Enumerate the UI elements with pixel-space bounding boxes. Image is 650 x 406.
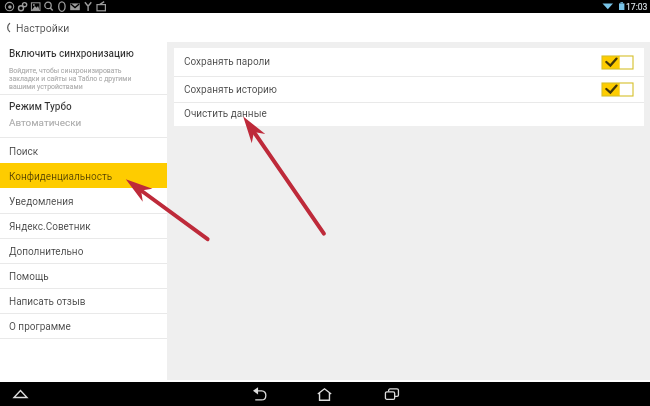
button[interactable]: Очистить данные [174,103,644,126]
staticText: О программе [9,321,71,333]
button[interactable]: Уведомления [0,188,167,213]
button[interactable]: Включить синхронизацию [0,42,167,94]
staticText: Войдите, чтобы синхронизировать закладки… [9,67,132,91]
staticText: Очистить данные [184,108,267,120]
button[interactable]: Поиск [0,138,167,163]
button[interactable]: Expand menu [6,382,35,406]
staticText: Дополнительно [9,246,84,258]
button[interactable]: Recent apps [375,382,408,406]
staticText: Сохранять историю [184,84,277,96]
button[interactable]: Back [243,382,276,406]
staticText: Сохранять пароли [184,56,271,68]
button[interactable]: Яндекс.Советник [0,214,167,238]
staticText: Яндекс.Советник [9,221,91,233]
button[interactable]: Back [0,13,16,42]
button[interactable]: Написать отзыв [0,289,167,313]
button[interactable]: О программе [0,314,167,338]
staticText: Конфиденциальность [9,171,113,183]
staticText: Настройки [16,22,70,34]
staticText: Автоматически [9,117,82,129]
staticText: Включить синхронизацию [9,48,134,60]
button[interactable]: Сохранять пароли [174,48,644,76]
button[interactable]: Сохранять историю [174,77,644,102]
button[interactable]: Режим Турбо [0,95,167,137]
staticText: Помощь [9,271,49,283]
staticText: Поиск [9,146,39,158]
button[interactable]: Дополнительно [0,239,167,263]
button[interactable]: Конфиденциальность [0,163,167,188]
button[interactable]: Помощь [0,264,167,288]
button[interactable]: Home [308,382,341,406]
staticText: 17:03 [626,2,648,12]
staticText: Написать отзыв [9,296,86,308]
staticText: Уведомления [9,196,74,208]
staticText: Режим Турбо [9,101,72,113]
